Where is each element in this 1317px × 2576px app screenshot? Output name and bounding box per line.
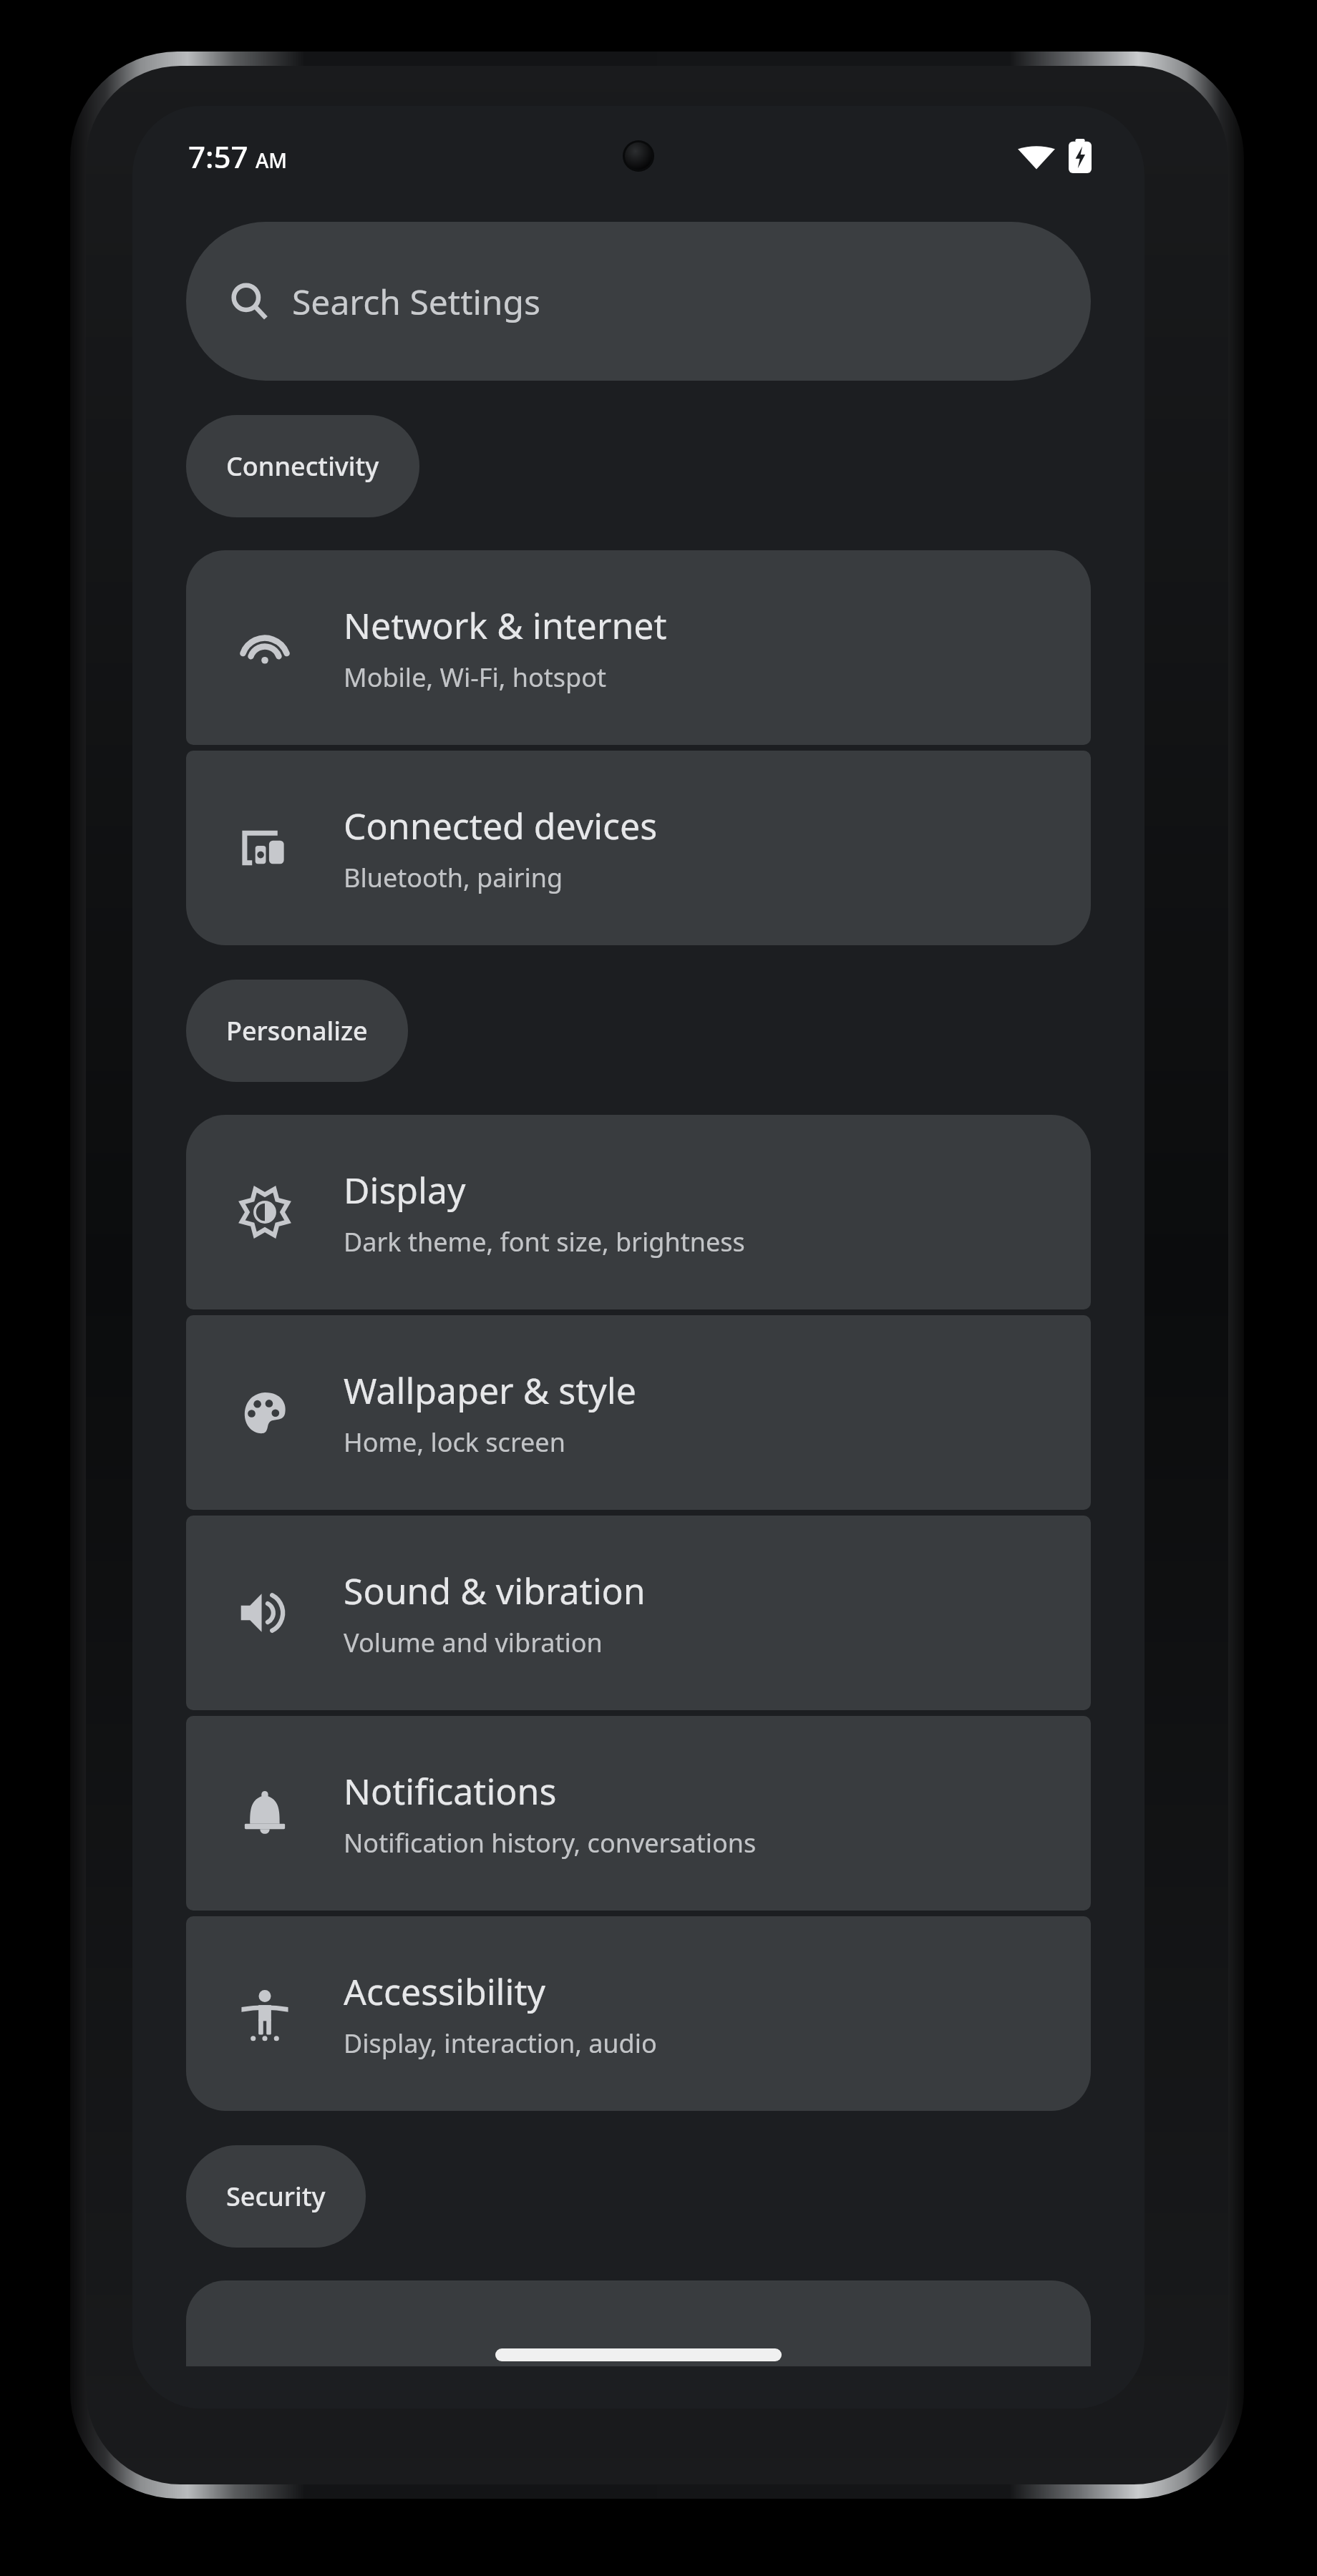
staticText: Network & internet [344, 601, 667, 650]
staticText: Bluetooth, pairing [344, 860, 563, 895]
staticText: Display, interaction, audio [344, 2026, 657, 2061]
staticText: Sound & vibration [344, 1566, 646, 1615]
staticText: Dark theme, font size, brightness [344, 1224, 745, 1259]
staticText: Personalize [226, 1013, 368, 1048]
staticText: AM [256, 147, 288, 174]
button[interactable]: Personalize [186, 980, 408, 1082]
button[interactable]: Notifications [186, 1716, 1091, 1911]
button[interactable]: Connected devices [186, 751, 1091, 945]
staticText: Search Settings [292, 278, 541, 325]
staticText: Volume and vibration [344, 1625, 603, 1660]
staticText: Home, lock screen [344, 1425, 565, 1460]
button[interactable]: Sound & vibration [186, 1516, 1091, 1710]
staticText: Notification history, conversations [344, 1825, 757, 1860]
staticText: Security [226, 2179, 326, 2214]
button[interactable]: Connectivity [186, 415, 419, 517]
staticText: Accessibility [344, 1967, 545, 2016]
staticText: Mobile, Wi-Fi, hotspot [344, 660, 606, 695]
button[interactable]: Accessibility [186, 1916, 1091, 2111]
button[interactable]: Display [186, 1115, 1091, 1309]
button[interactable]: Wallpaper & style [186, 1315, 1091, 1510]
staticText: Notifications [344, 1767, 557, 1815]
staticText: Connectivity [226, 449, 379, 484]
button[interactable] [186, 2280, 1091, 2366]
button[interactable]: Search Settings [186, 222, 1091, 381]
staticText: 7:57 [188, 136, 248, 177]
staticText: Display [344, 1166, 466, 1214]
button[interactable]: Network & internet [186, 550, 1091, 745]
button[interactable]: Security [186, 2145, 366, 2248]
staticText: Wallpaper & style [344, 1366, 636, 1415]
staticText: Connected devices [344, 801, 658, 850]
